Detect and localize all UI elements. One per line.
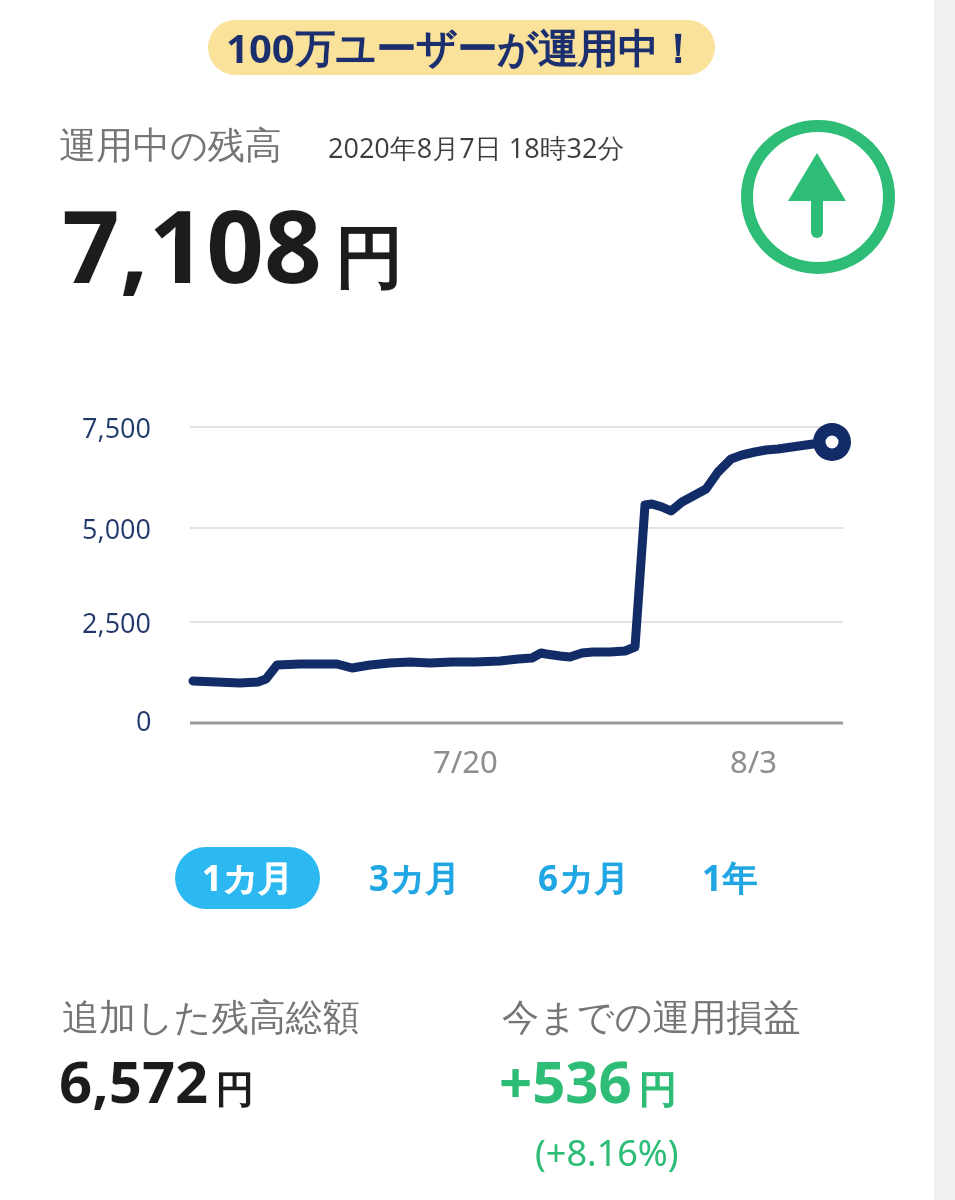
button[interactable]: 1カ月 <box>175 847 320 909</box>
button[interactable]: 3カ月 <box>354 847 474 909</box>
staticText: 6,572 <box>59 1041 209 1120</box>
staticText: (+8.16%) <box>535 1128 679 1176</box>
staticText: 追加した残高総額 <box>62 994 360 1041</box>
staticText: 2020年8月7日 18時32分 <box>328 129 625 166</box>
staticText: 7,500 <box>82 409 152 445</box>
staticText: 円 <box>215 1066 253 1114</box>
staticText: 6カ月 <box>538 854 629 902</box>
staticText: 8/3 <box>730 740 777 780</box>
staticText: 円 <box>638 1066 676 1114</box>
staticText: 7/20 <box>433 740 498 780</box>
staticText: 今までの運用損益 <box>502 994 801 1041</box>
staticText: +536 <box>499 1041 632 1120</box>
staticText: 5,000 <box>82 510 152 546</box>
staticText: 円 <box>334 217 402 303</box>
staticText: 2,500 <box>82 604 152 640</box>
button[interactable]: 100万ユーザーが運用中！ <box>208 20 715 75</box>
staticText: 0 <box>136 702 152 738</box>
staticText: 1年 <box>702 854 758 902</box>
button[interactable]: 6カ月 <box>523 847 643 909</box>
staticText: 7,108 <box>62 175 322 313</box>
button[interactable]: 1年 <box>670 847 790 909</box>
staticText: 運用中の残高 <box>59 122 282 169</box>
staticText: 1カ月 <box>202 854 293 902</box>
button[interactable] <box>741 120 895 274</box>
staticText: 3カ月 <box>369 854 460 902</box>
staticText: 100万ユーザーが運用中！ <box>226 20 698 75</box>
